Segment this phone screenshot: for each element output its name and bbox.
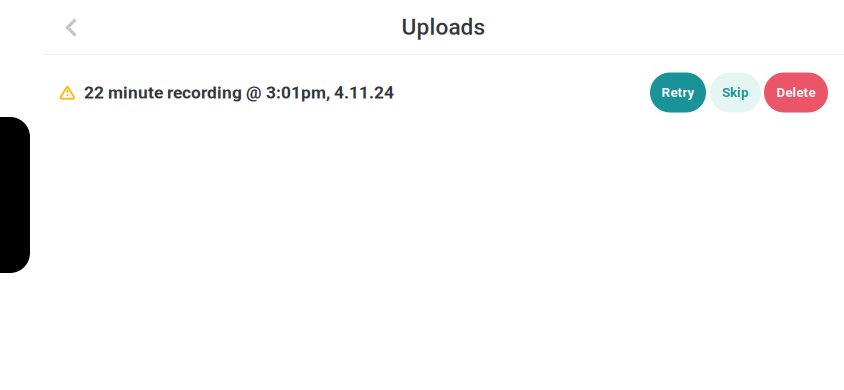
staticText: Skip <box>722 85 749 100</box>
button[interactable]: Delete <box>764 72 828 112</box>
button[interactable]: Skip <box>710 72 761 112</box>
staticText: Delete <box>776 85 815 100</box>
staticText: Uploads <box>401 14 485 40</box>
staticText: 22 minute recording @ 3:01pm, 4.11.24 <box>84 82 394 103</box>
button[interactable]: Back <box>65 5 109 49</box>
button[interactable]: Retry <box>650 72 706 112</box>
staticText: Retry <box>661 85 694 100</box>
